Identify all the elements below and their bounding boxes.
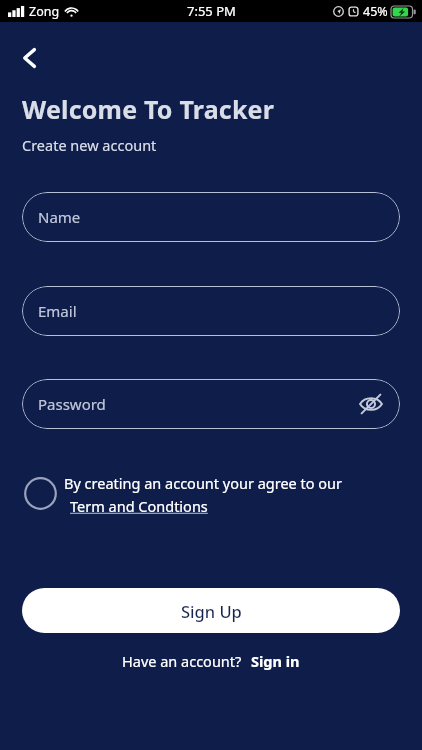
staticText: 45%	[363, 3, 388, 20]
button[interactable]: Name	[22, 192, 400, 242]
staticText: Zong	[29, 3, 60, 20]
staticText: Have an account?	[122, 651, 242, 671]
button[interactable]: Back	[8, 36, 52, 80]
button[interactable]: Email	[22, 286, 400, 336]
other: Accept terms	[24, 477, 57, 510]
staticText: By creating an account your agree to our	[64, 473, 343, 493]
button[interactable]: Sign in	[251, 651, 300, 671]
staticText: Password	[38, 394, 106, 414]
button[interactable]: Password	[22, 379, 400, 429]
staticText: Email	[38, 301, 77, 321]
staticText: Create new account	[22, 135, 157, 155]
button[interactable]: Sign Up	[22, 588, 400, 633]
staticText: Sign Up	[181, 600, 242, 622]
staticText: Name	[38, 207, 81, 227]
button[interactable]: Show password	[356, 389, 386, 419]
staticText: Sign in	[251, 651, 300, 671]
staticText: 7:55 PM	[187, 2, 236, 20]
staticText: Welcome To Tracker	[22, 92, 275, 126]
button[interactable]: Term and Condtions	[70, 496, 208, 516]
button[interactable]: Accept terms	[24, 473, 398, 516]
